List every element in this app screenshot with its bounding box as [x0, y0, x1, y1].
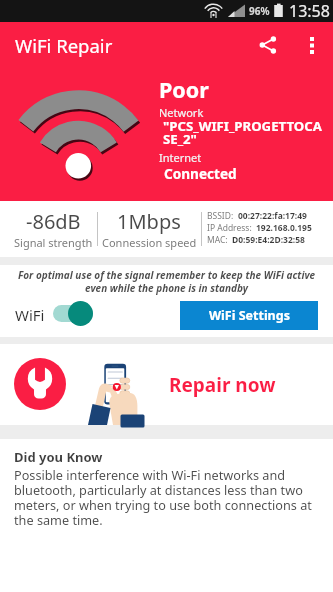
staticText: WiFi Settings: [209, 307, 290, 324]
button[interactable]: WiFi on/off: [50, 301, 96, 327]
staticText: -86dB: [26, 208, 81, 235]
staticText: Connected: [164, 164, 237, 183]
button[interactable]: More options: [291, 24, 333, 66]
staticText: For optimal use of the signal remember t…: [12, 268, 321, 295]
staticText: Network: [159, 105, 204, 120]
staticText: 192.168.0.195: [256, 222, 312, 234]
staticText: "PCS_WIFI_PROGETTOCASE_2": [163, 117, 329, 148]
staticText: Poor: [159, 75, 209, 104]
button[interactable]: WiFi Settings: [180, 301, 318, 330]
staticText: Internet: [159, 150, 202, 165]
staticText: BSSID:: [207, 210, 234, 222]
staticText: 00:27:22:fa:17:49: [238, 210, 307, 222]
staticText: 1Mbps: [117, 208, 181, 235]
button[interactable]: Repair now: [0, 344, 333, 425]
staticText: Signal strength: [14, 235, 93, 250]
button[interactable]: Share: [245, 22, 291, 68]
staticText: WiFi Repair: [15, 33, 113, 58]
staticText: D0:59:E4:2D:32:58: [232, 234, 305, 246]
staticText: IP Address:: [207, 222, 252, 234]
staticText: Did you Know: [14, 448, 103, 466]
staticText: WiFi: [15, 305, 45, 325]
staticText: Possible interference with Wi-Fi network…: [14, 466, 319, 529]
staticText: Repair now: [169, 372, 276, 398]
staticText: 13:58: [289, 0, 330, 22]
staticText: MAC:: [207, 234, 228, 246]
staticText: Connession speed: [102, 235, 197, 250]
staticText: 96%: [249, 4, 270, 18]
